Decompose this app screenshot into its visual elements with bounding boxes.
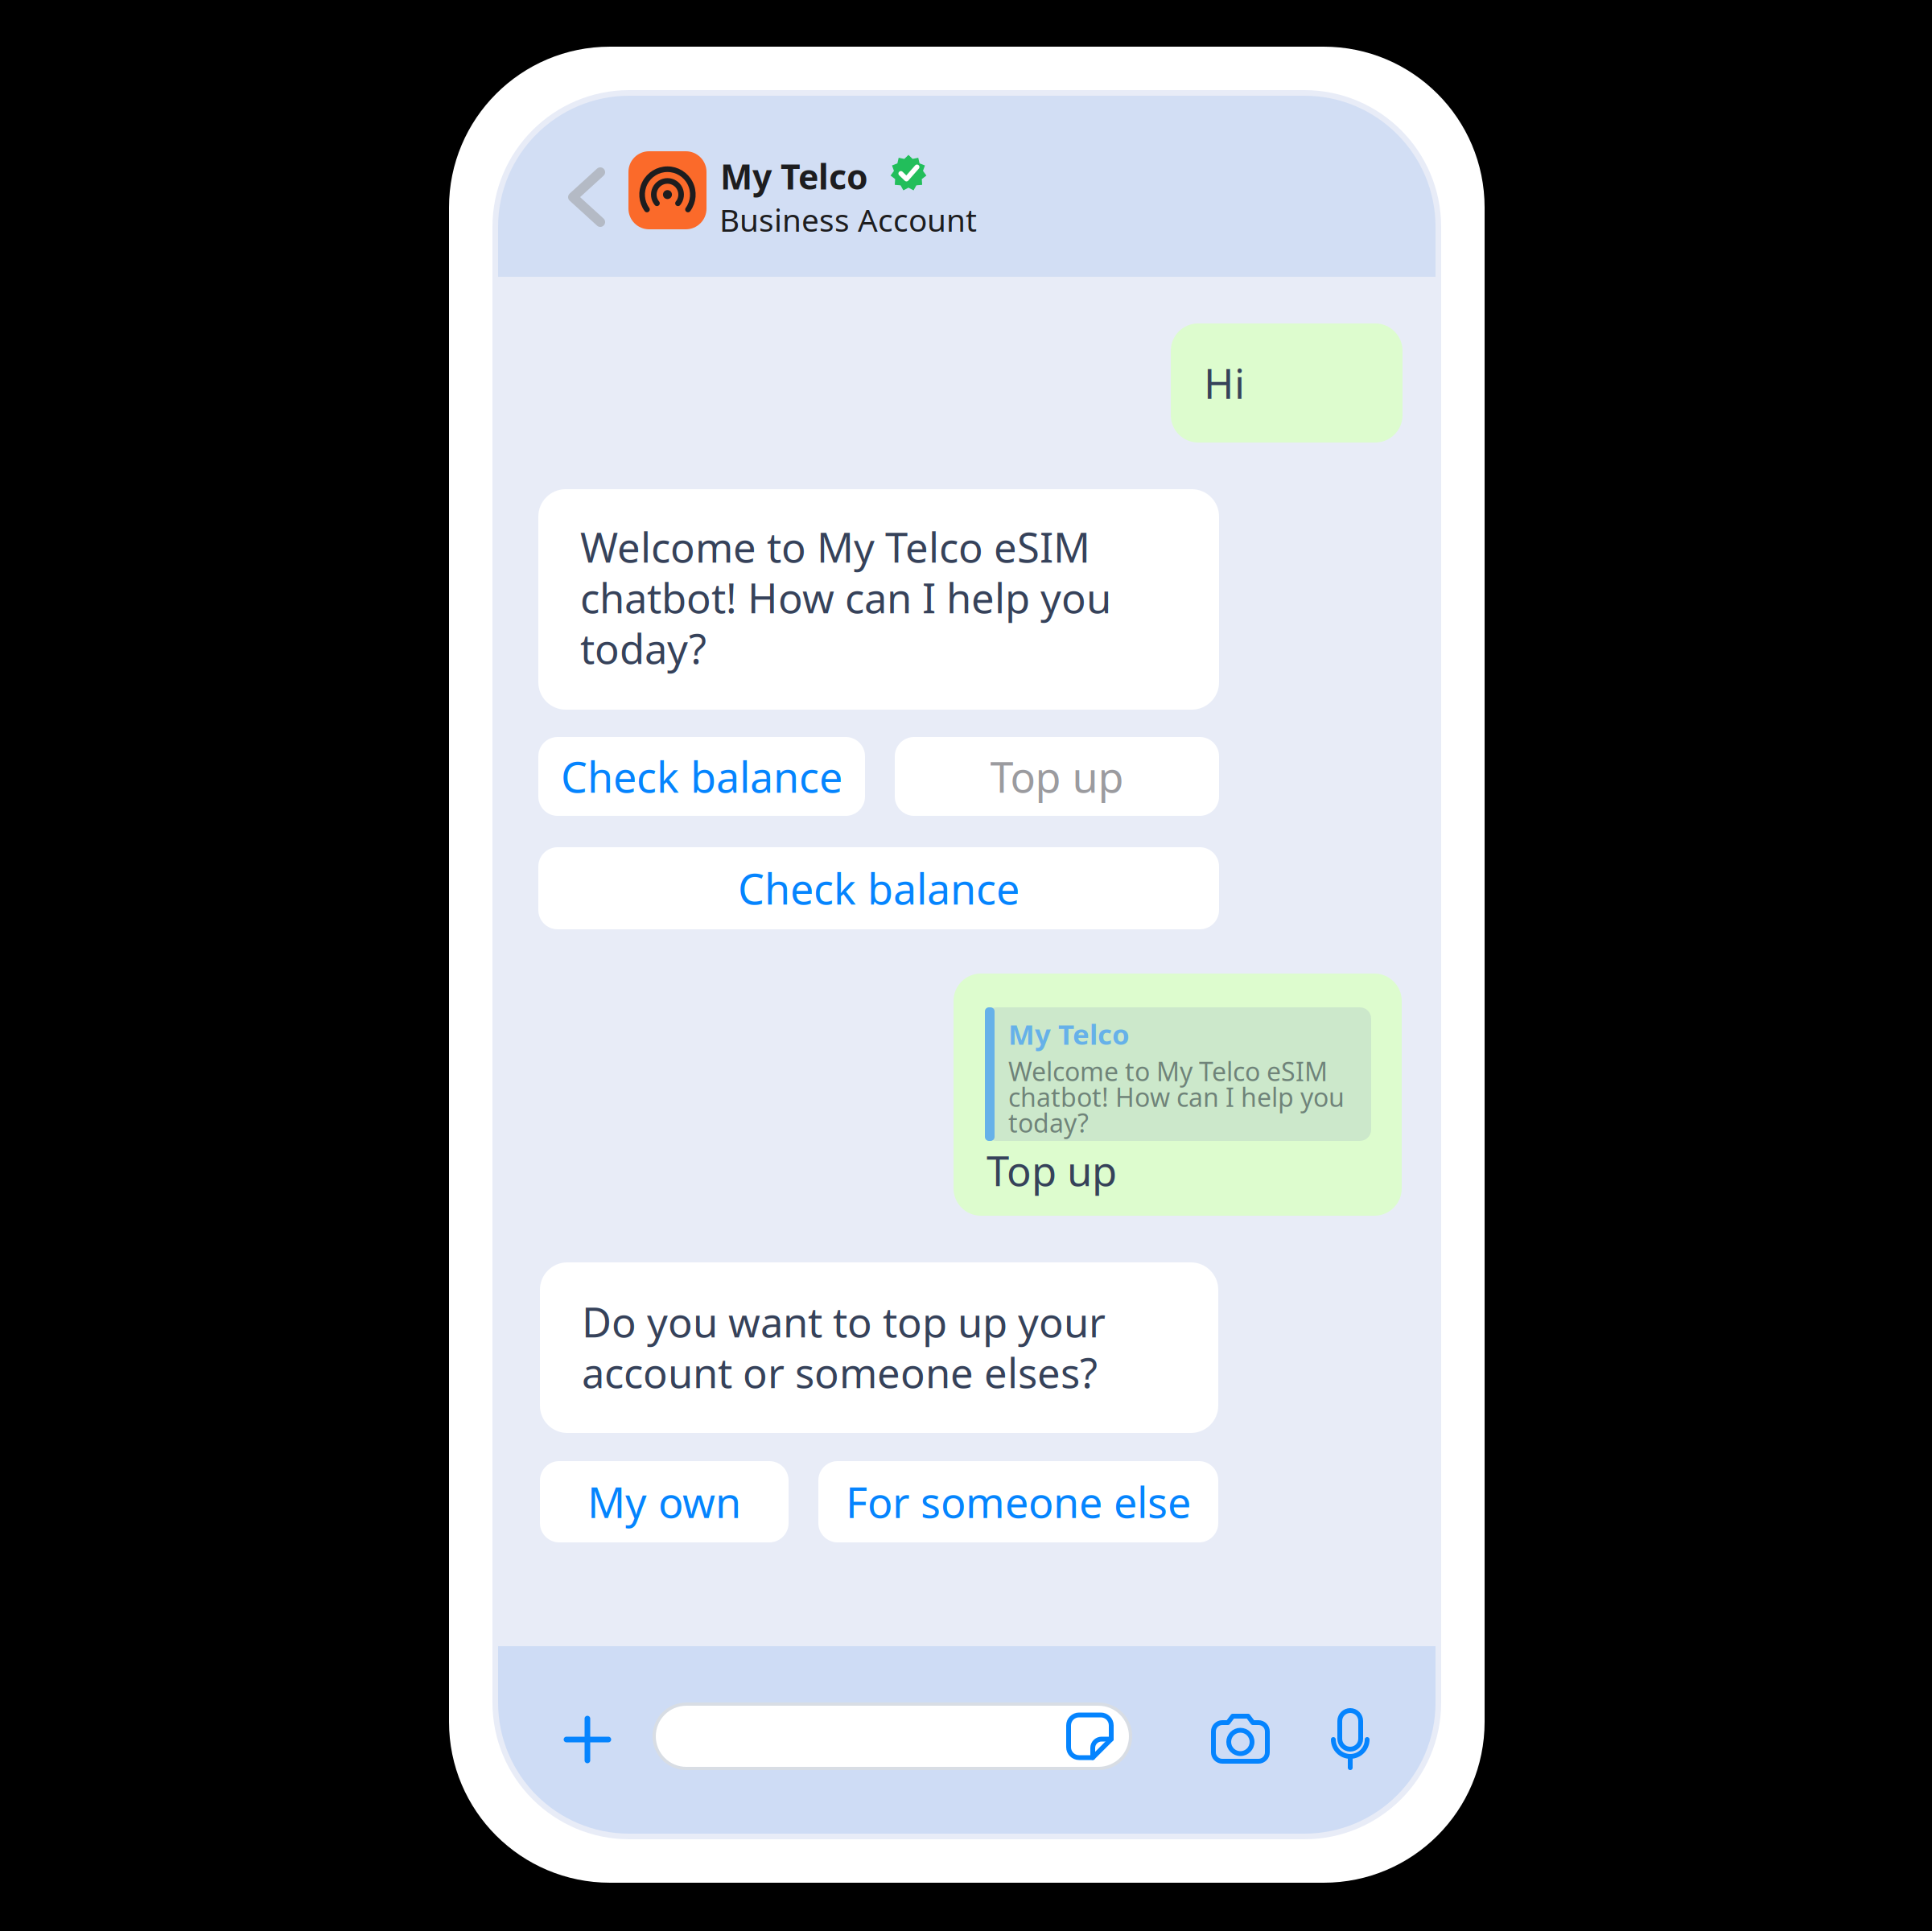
staticText: today? <box>580 621 706 675</box>
staticText: For someone else <box>846 1474 1191 1530</box>
staticText: chatbot! How can I help you <box>580 570 1111 625</box>
button[interactable]: Check balance <box>538 737 865 816</box>
button[interactable]: Top up <box>895 737 1219 816</box>
button[interactable]: Record audio <box>1331 1711 1369 1768</box>
button[interactable]: Stickers <box>1069 1715 1111 1758</box>
staticText: Do you want to top up your <box>582 1295 1106 1349</box>
staticText: Top up <box>990 749 1124 804</box>
button[interactable]: My own <box>540 1461 789 1542</box>
staticText: Check balance <box>738 861 1020 916</box>
staticText: Top up <box>987 1143 1117 1197</box>
button[interactable]: Add attachment <box>564 1716 611 1763</box>
staticText: Check balance <box>561 749 842 804</box>
button[interactable]: Camera <box>1213 1716 1267 1761</box>
staticText: My Telco <box>1008 1015 1130 1052</box>
staticText: today? <box>1008 1105 1089 1140</box>
staticText: My own <box>587 1474 741 1530</box>
button[interactable]: Back <box>549 148 624 246</box>
staticText: Welcome to My Telco eSIM <box>580 520 1090 574</box>
staticText: Business Account <box>719 199 977 240</box>
button[interactable]: For someone else <box>818 1461 1218 1542</box>
staticText: Hi <box>1204 356 1245 410</box>
button[interactable]: Check balance <box>538 847 1219 929</box>
staticText: Welcome to My Telco eSIM <box>1008 1054 1328 1088</box>
staticText: My Telco <box>720 153 868 199</box>
staticText: chatbot! How can I help you <box>1008 1080 1345 1114</box>
staticText: account or someone elses? <box>582 1345 1098 1399</box>
